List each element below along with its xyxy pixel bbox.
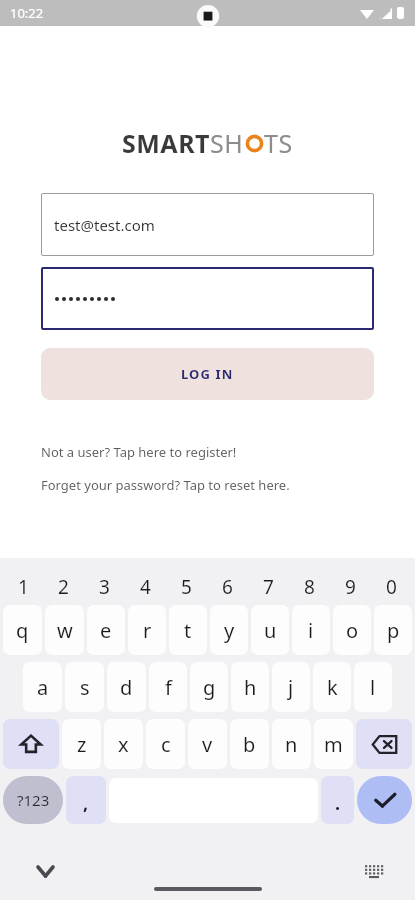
button[interactable]: k (313, 662, 351, 712)
staticText: c (161, 731, 171, 758)
staticText: Not a user? Tap here to register! (41, 443, 237, 461)
button[interactable]: Enter (357, 776, 412, 824)
staticText: 0 (386, 574, 397, 600)
staticText: , (83, 791, 89, 816)
button[interactable]: c (146, 719, 185, 769)
button[interactable]: 2 (43, 574, 84, 600)
button[interactable]: 8 (289, 574, 330, 600)
staticText: i (308, 617, 314, 644)
staticText: m (324, 731, 343, 758)
button[interactable]: LOG IN (41, 348, 374, 400)
staticText: test@test.com (54, 215, 155, 235)
button[interactable]: h (231, 662, 269, 712)
button[interactable]: o (333, 605, 371, 655)
button[interactable]: n (272, 719, 311, 769)
button[interactable] (41, 267, 374, 330)
button[interactable]: 9 (330, 574, 371, 600)
button[interactable]: Switch keyboard (359, 856, 389, 886)
button[interactable]: 5 (166, 574, 207, 600)
button[interactable]: x (104, 719, 143, 769)
staticText: TS (264, 126, 293, 160)
staticText: r (143, 617, 152, 644)
staticText: d (120, 674, 133, 701)
button[interactable]: y (210, 605, 248, 655)
staticText: v (202, 731, 213, 758)
button[interactable]: g (190, 662, 228, 712)
staticText: 10:22 (10, 4, 44, 22)
button[interactable]: ?123 (3, 776, 63, 824)
button[interactable]: Shift (3, 719, 59, 769)
button[interactable]: 1 (3, 574, 43, 600)
staticText: x (118, 731, 129, 758)
button[interactable]: Hide keyboard (30, 856, 60, 886)
button[interactable]: l (354, 662, 392, 712)
button[interactable]: Not a user? Tap here to register! (41, 443, 374, 461)
staticText: h (244, 674, 257, 701)
button[interactable]: v (188, 719, 227, 769)
button[interactable]: s (65, 662, 104, 712)
staticText: n (285, 731, 298, 758)
button[interactable]: m (314, 719, 353, 769)
staticText: b (243, 731, 256, 758)
staticText: ?123 (17, 790, 50, 810)
button[interactable]: f (149, 662, 187, 712)
button[interactable]: d (107, 662, 146, 712)
button[interactable]: 3 (84, 574, 125, 600)
staticText: g (203, 674, 216, 701)
staticText: s (80, 674, 90, 701)
staticText: LOG IN (181, 365, 234, 383)
staticText: q (16, 617, 29, 644)
staticText: 4 (140, 574, 151, 600)
staticText: 9 (345, 574, 356, 600)
staticText: z (77, 731, 87, 758)
staticText: . (335, 791, 341, 816)
staticText: 2 (58, 574, 69, 600)
staticText: l (370, 674, 376, 701)
button[interactable]: e (87, 605, 125, 655)
staticText: f (165, 674, 172, 701)
button[interactable]: 7 (248, 574, 289, 600)
staticText: t (184, 617, 192, 644)
staticText: w (57, 617, 73, 644)
button[interactable]: , (66, 776, 106, 824)
button[interactable]: t (169, 605, 207, 655)
staticText: Forget your password? Tap to reset here. (41, 476, 290, 494)
staticText: p (387, 617, 400, 644)
button[interactable]: q (3, 605, 42, 655)
button[interactable]: z (62, 719, 101, 769)
button[interactable]: p (374, 605, 412, 655)
staticText: SMART (122, 126, 210, 160)
button[interactable]: u (251, 605, 289, 655)
button[interactable]: b (230, 719, 269, 769)
staticText: e (100, 617, 112, 644)
button[interactable]: 0 (371, 574, 412, 600)
button[interactable]: r (128, 605, 166, 655)
staticText: k (327, 674, 338, 701)
staticText: u (264, 617, 277, 644)
staticText: 6 (222, 574, 233, 600)
button[interactable]: . (321, 776, 354, 824)
staticText: SH (210, 126, 244, 160)
staticText: y (224, 617, 235, 644)
staticText: 7 (263, 574, 274, 600)
button[interactable]: j (272, 662, 310, 712)
staticText: j (288, 674, 294, 701)
staticText: a (37, 674, 49, 701)
staticText: 8 (304, 574, 315, 600)
button[interactable]: i (292, 605, 330, 655)
button[interactable]: Forget your password? Tap to reset here. (41, 476, 374, 494)
button[interactable]: 6 (207, 574, 248, 600)
button[interactable]: 4 (125, 574, 166, 600)
button[interactable]: Backspace (356, 719, 412, 769)
staticText: 3 (99, 574, 110, 600)
staticText: o (346, 617, 359, 644)
button[interactable]: test@test.com (41, 193, 374, 256)
button[interactable]: a (23, 662, 62, 712)
button[interactable]: w (45, 605, 84, 655)
staticText: 5 (181, 574, 192, 600)
staticText: 1 (18, 574, 29, 600)
